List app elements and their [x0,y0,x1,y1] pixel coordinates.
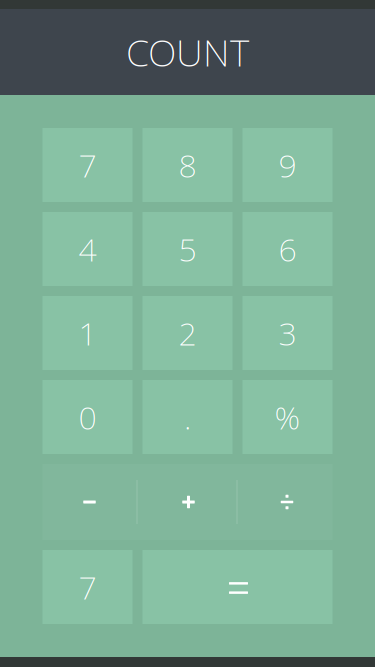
button[interactable]: Equals [142,550,332,624]
staticText: 7 [78,566,96,608]
button[interactable]: Divide [237,464,332,540]
staticText: COUNT [126,27,249,77]
button[interactable]: 5 [142,212,232,286]
staticText: 8 [178,144,196,186]
staticText: 9 [278,144,296,186]
staticText: 4 [78,228,96,270]
staticText: 5 [178,228,196,270]
button[interactable]: 3 [242,296,332,370]
button[interactable]: 7 [42,550,132,624]
button[interactable]: Add [137,464,236,540]
staticText: % [274,396,300,438]
button[interactable]: 1 [42,296,132,370]
button[interactable]: 9 [242,128,332,202]
staticText: 2 [178,312,196,354]
button[interactable]: 4 [42,212,132,286]
button[interactable]: 8 [142,128,232,202]
button[interactable]: 7 [42,128,132,202]
button[interactable]: % [242,380,332,454]
staticText: 3 [278,312,296,354]
staticText: 7 [78,144,96,186]
button[interactable]: Subtract [42,464,136,540]
button[interactable]: 2 [142,296,232,370]
button[interactable]: 6 [242,212,332,286]
button[interactable]: 0 [42,380,132,454]
staticText: 0 [78,396,96,438]
staticText: 1 [78,312,96,354]
staticText: 6 [278,228,296,270]
staticText: . [184,396,191,438]
